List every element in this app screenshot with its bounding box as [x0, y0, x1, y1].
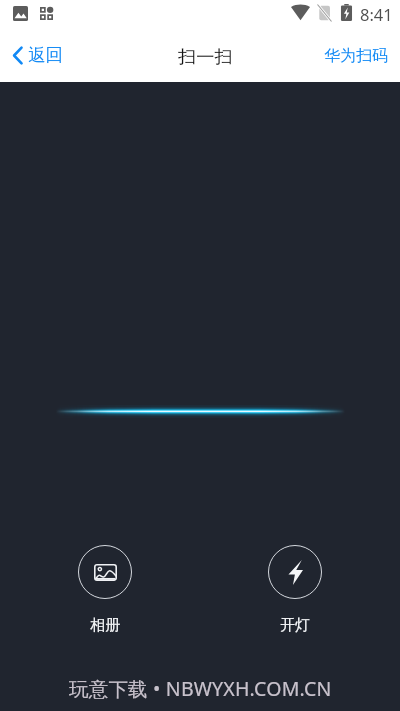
button[interactable]: 开灯 [268, 545, 322, 635]
staticText: 开灯 [280, 616, 310, 635]
staticText: 玩意下载 • NBWYXH.COM.CN [69, 675, 332, 702]
staticText: 扫一扫 [178, 45, 233, 68]
staticText: 返回 [28, 44, 63, 66]
button[interactable]: 相册 [78, 545, 132, 635]
staticText: 8:41 [360, 3, 393, 25]
button[interactable]: 华为扫码 [310, 36, 400, 76]
staticText: 相册 [90, 616, 120, 635]
staticText: 华为扫码 [324, 46, 388, 66]
button[interactable]: 返回 [0, 36, 75, 74]
